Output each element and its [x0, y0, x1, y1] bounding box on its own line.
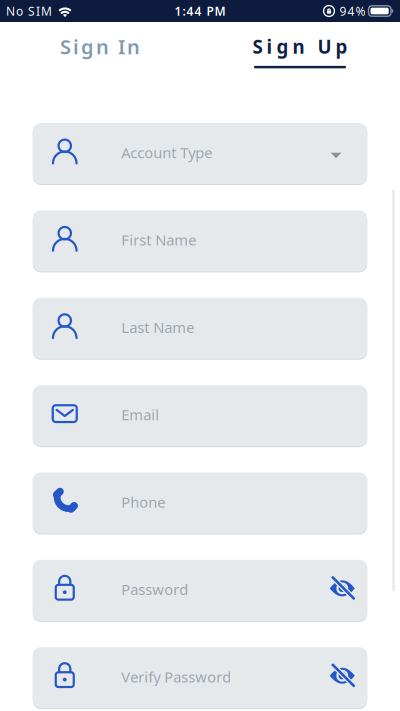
- staticText: Phone: [121, 492, 165, 512]
- staticText: Password: [121, 580, 188, 599]
- button[interactable]: Show password: [329, 665, 367, 691]
- button[interactable]: Last Name: [33, 298, 367, 359]
- staticText: 9 4 %: [339, 3, 365, 19]
- staticText: N o S I M: [6, 3, 52, 19]
- staticText: Verify Password: [121, 667, 231, 686]
- staticText: Account Type: [121, 143, 212, 162]
- staticText: S i g n U p: [252, 34, 347, 59]
- staticText: Last Name: [121, 317, 194, 337]
- button[interactable]: Show password: [329, 577, 367, 603]
- staticText: 1 : 4 4 P M: [174, 3, 225, 19]
- button[interactable]: Email: [33, 385, 367, 446]
- staticText: S i g n I n: [60, 33, 140, 60]
- button[interactable]: Phone: [33, 472, 367, 533]
- button[interactable]: S i g n I n: [0, 21, 200, 71]
- staticText: First Name: [121, 230, 196, 250]
- staticText: Email: [121, 405, 159, 424]
- button[interactable]: First Name: [33, 210, 367, 271]
- button[interactable]: Account Type: [33, 123, 367, 184]
- button[interactable]: Verify Password: [33, 647, 367, 708]
- button[interactable]: Password: [33, 560, 367, 621]
- button[interactable]: S i g n U p: [200, 21, 400, 71]
